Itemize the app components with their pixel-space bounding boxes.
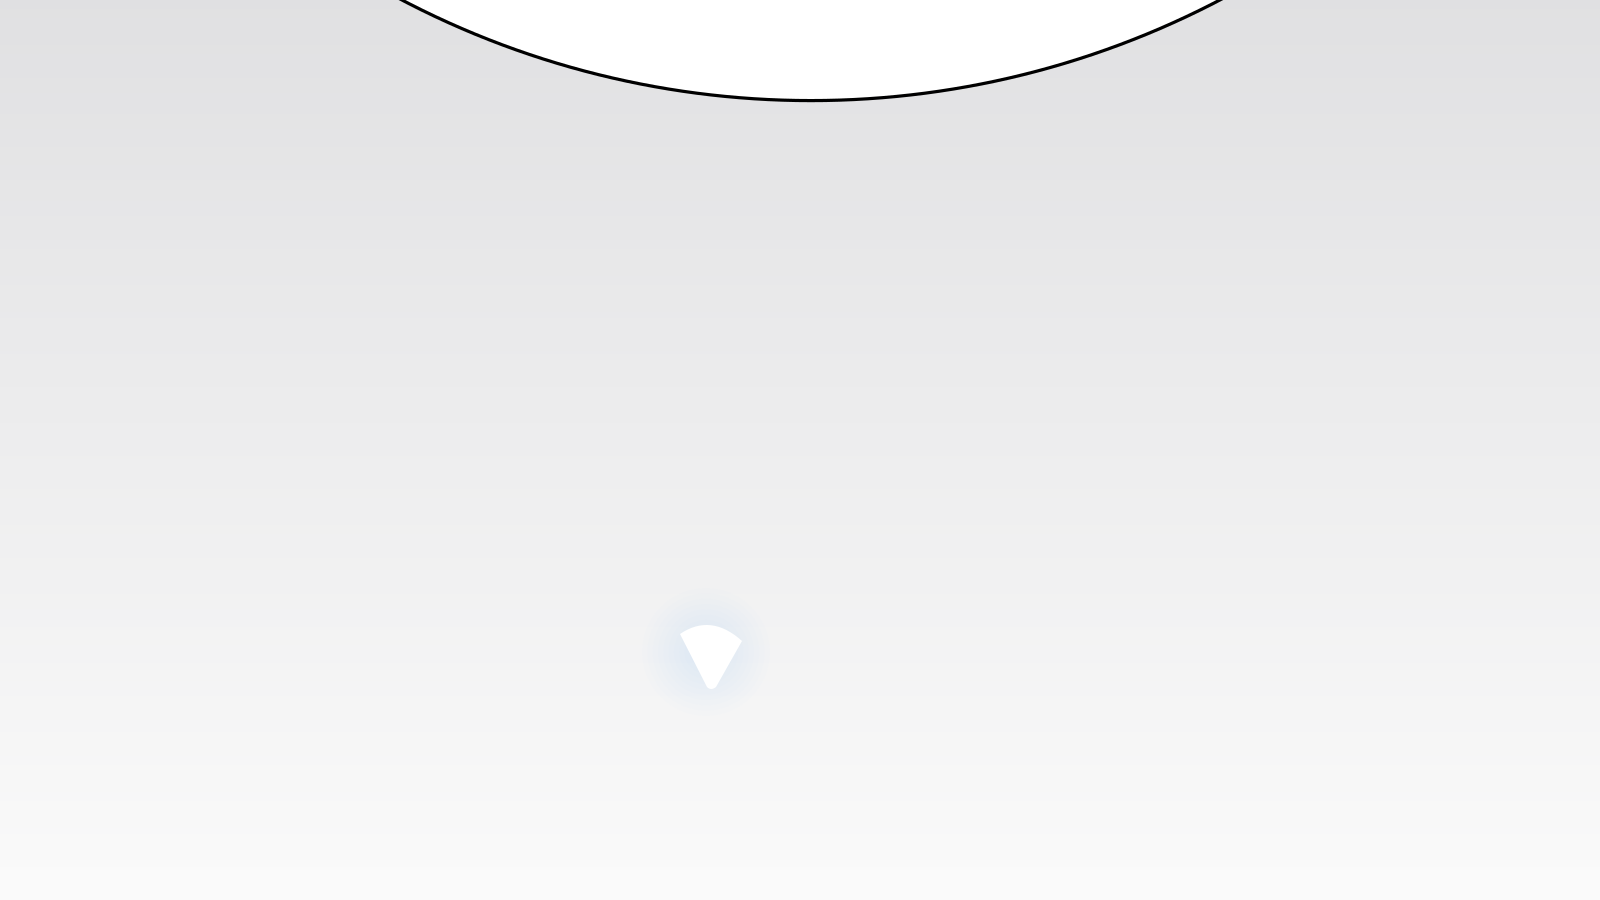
button[interactable]: Current location and heading: [646, 592, 766, 712]
